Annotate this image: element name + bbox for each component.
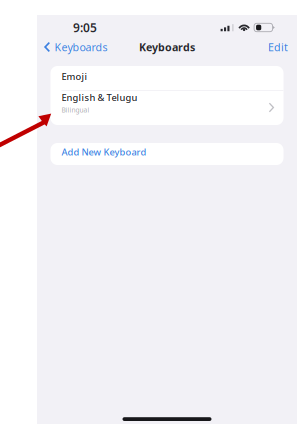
staticText: Emoji — [61, 70, 87, 83]
button[interactable]: English & Telugu — [50, 91, 283, 125]
staticText: Bilingual — [61, 106, 89, 114]
button[interactable]: Emoji — [50, 66, 283, 90]
staticText: Keyboards — [54, 40, 107, 54]
button[interactable]: Edit — [268, 36, 297, 58]
staticText: Edit — [268, 40, 288, 54]
button[interactable]: Add New Keyboard — [50, 143, 283, 165]
staticText: Keyboards — [139, 40, 195, 54]
staticText: 9:05 — [73, 19, 97, 35]
staticText: Add New Keyboard — [61, 146, 146, 158]
button[interactable]: Keyboards — [37, 36, 107, 58]
staticText: English & Telugu — [61, 91, 137, 104]
